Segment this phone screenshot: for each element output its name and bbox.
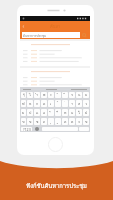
button[interactable]: ๆ — [21, 92, 26, 98]
button[interactable]: ช — [34, 118, 40, 125]
staticText: ส — [78, 101, 81, 107]
button[interactable]: จ — [76, 118, 82, 125]
button[interactable]: ร — [69, 92, 75, 98]
button[interactable]: ะ — [48, 92, 54, 98]
button[interactable]: ใ — [76, 109, 82, 116]
button[interactable]: ก — [34, 100, 40, 107]
staticText: ว — [85, 101, 88, 107]
button[interactable]: ้ — [55, 100, 61, 107]
button[interactable]: ข — [27, 118, 33, 125]
staticText: อ — [43, 110, 46, 116]
staticText: ม — [71, 110, 74, 116]
staticText: ฃ — [22, 119, 25, 125]
button[interactable]: อ — [41, 109, 47, 116]
staticText: ๆ — [23, 92, 25, 98]
button[interactable]: ค — [62, 118, 68, 125]
staticText: ถ — [43, 119, 46, 125]
staticText: ฟังก์ชันค้นหาการประชุม — [0, 181, 113, 190]
button[interactable]: ว — [83, 100, 89, 107]
staticText: ต — [71, 119, 74, 125]
button[interactable]: ห — [27, 100, 33, 107]
button[interactable]: เ — [48, 100, 54, 107]
staticText: า — [71, 101, 74, 107]
staticText: ช — [36, 119, 39, 125]
button[interactable] — [20, 41, 90, 66]
staticText: ใ — [78, 110, 80, 116]
staticText: ก — [36, 101, 39, 107]
button[interactable]: ท — [62, 109, 68, 116]
staticText: แ — [36, 110, 39, 116]
staticText: ข — [85, 119, 88, 125]
button[interactable]: พ — [41, 92, 47, 98]
button[interactable]: ่ — [62, 100, 68, 107]
staticText: ด — [43, 101, 46, 107]
button[interactable]: Search — [81, 32, 88, 38]
button[interactable]: ข — [83, 118, 89, 125]
button[interactable]: ี — [62, 92, 68, 98]
staticText: ค้นหา — [50, 23, 61, 29]
button[interactable]: ด — [41, 100, 47, 107]
button[interactable]: ั — [55, 92, 61, 98]
button[interactable]: แ — [34, 109, 40, 116]
staticText: ะ — [50, 92, 52, 98]
button[interactable]: ถ — [41, 118, 47, 125]
button[interactable]: ู — [55, 118, 61, 125]
staticText: เ — [50, 101, 52, 107]
button[interactable]: ุ — [48, 118, 54, 125]
button[interactable]: ฃ — [21, 118, 26, 125]
staticText: ค้นหาการประชุม — [22, 33, 47, 38]
staticText: ฟ — [22, 101, 25, 107]
button[interactable] — [20, 68, 90, 87]
staticText: ค — [64, 119, 67, 125]
button[interactable]: ?123 — [21, 127, 32, 131]
staticText: ท — [64, 110, 67, 116]
staticText: ป — [29, 110, 32, 116]
button[interactable]: ผ — [21, 109, 26, 116]
staticText: ?123 — [23, 127, 31, 131]
button[interactable]: ค้นหาการประชุม — [22, 32, 80, 38]
staticText: ข — [29, 119, 32, 125]
button[interactable]: Back — [21, 24, 26, 29]
staticText: พ — [43, 92, 46, 98]
staticText: ำ — [36, 92, 39, 98]
button[interactable]: ไ — [27, 92, 33, 98]
staticText: ย — [85, 92, 88, 98]
button[interactable]: ื — [55, 109, 61, 116]
button[interactable]: ค้นหา — [20, 21, 90, 31]
button[interactable]: ม — [69, 109, 75, 116]
button[interactable]: ิ — [48, 109, 54, 116]
button[interactable]: ฝ — [83, 109, 89, 116]
staticText: จ — [78, 119, 81, 125]
button[interactable]: ำ — [34, 92, 40, 98]
button[interactable]: Voice input — [35, 127, 39, 131]
staticText: ไ — [29, 92, 31, 98]
button[interactable]: ป — [27, 109, 33, 116]
staticText: ฝ — [85, 110, 88, 116]
staticText: น — [78, 92, 81, 98]
staticText: ผ — [22, 110, 25, 116]
button[interactable]: ต — [69, 118, 75, 125]
button[interactable]: ฟ — [21, 100, 26, 107]
button[interactable]: น — [76, 92, 82, 98]
button[interactable]: า — [69, 100, 75, 107]
button[interactable]: ส — [76, 100, 82, 107]
button[interactable]: ย — [83, 92, 89, 98]
staticText: ห — [29, 101, 32, 107]
staticText: ร — [71, 92, 73, 98]
